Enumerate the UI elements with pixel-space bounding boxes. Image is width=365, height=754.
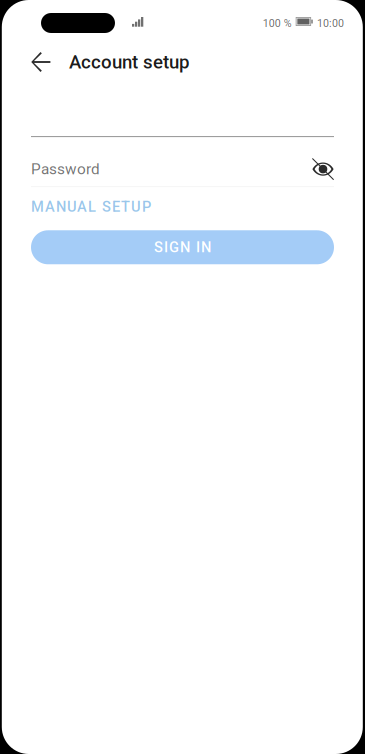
button[interactable]: SIGN IN xyxy=(31,230,334,264)
staticText: Password xyxy=(31,160,100,178)
staticText: MANUAL SETUP xyxy=(31,198,151,215)
button[interactable]: MANUAL SETUP xyxy=(31,187,151,220)
staticText: SIGN IN xyxy=(154,239,211,256)
button[interactable]: Back xyxy=(0,46,69,78)
staticText: 100 % xyxy=(263,17,292,29)
button[interactable]: Show password xyxy=(312,158,334,180)
staticText: 10:00 xyxy=(317,17,344,29)
staticText: Account setup xyxy=(69,51,189,73)
